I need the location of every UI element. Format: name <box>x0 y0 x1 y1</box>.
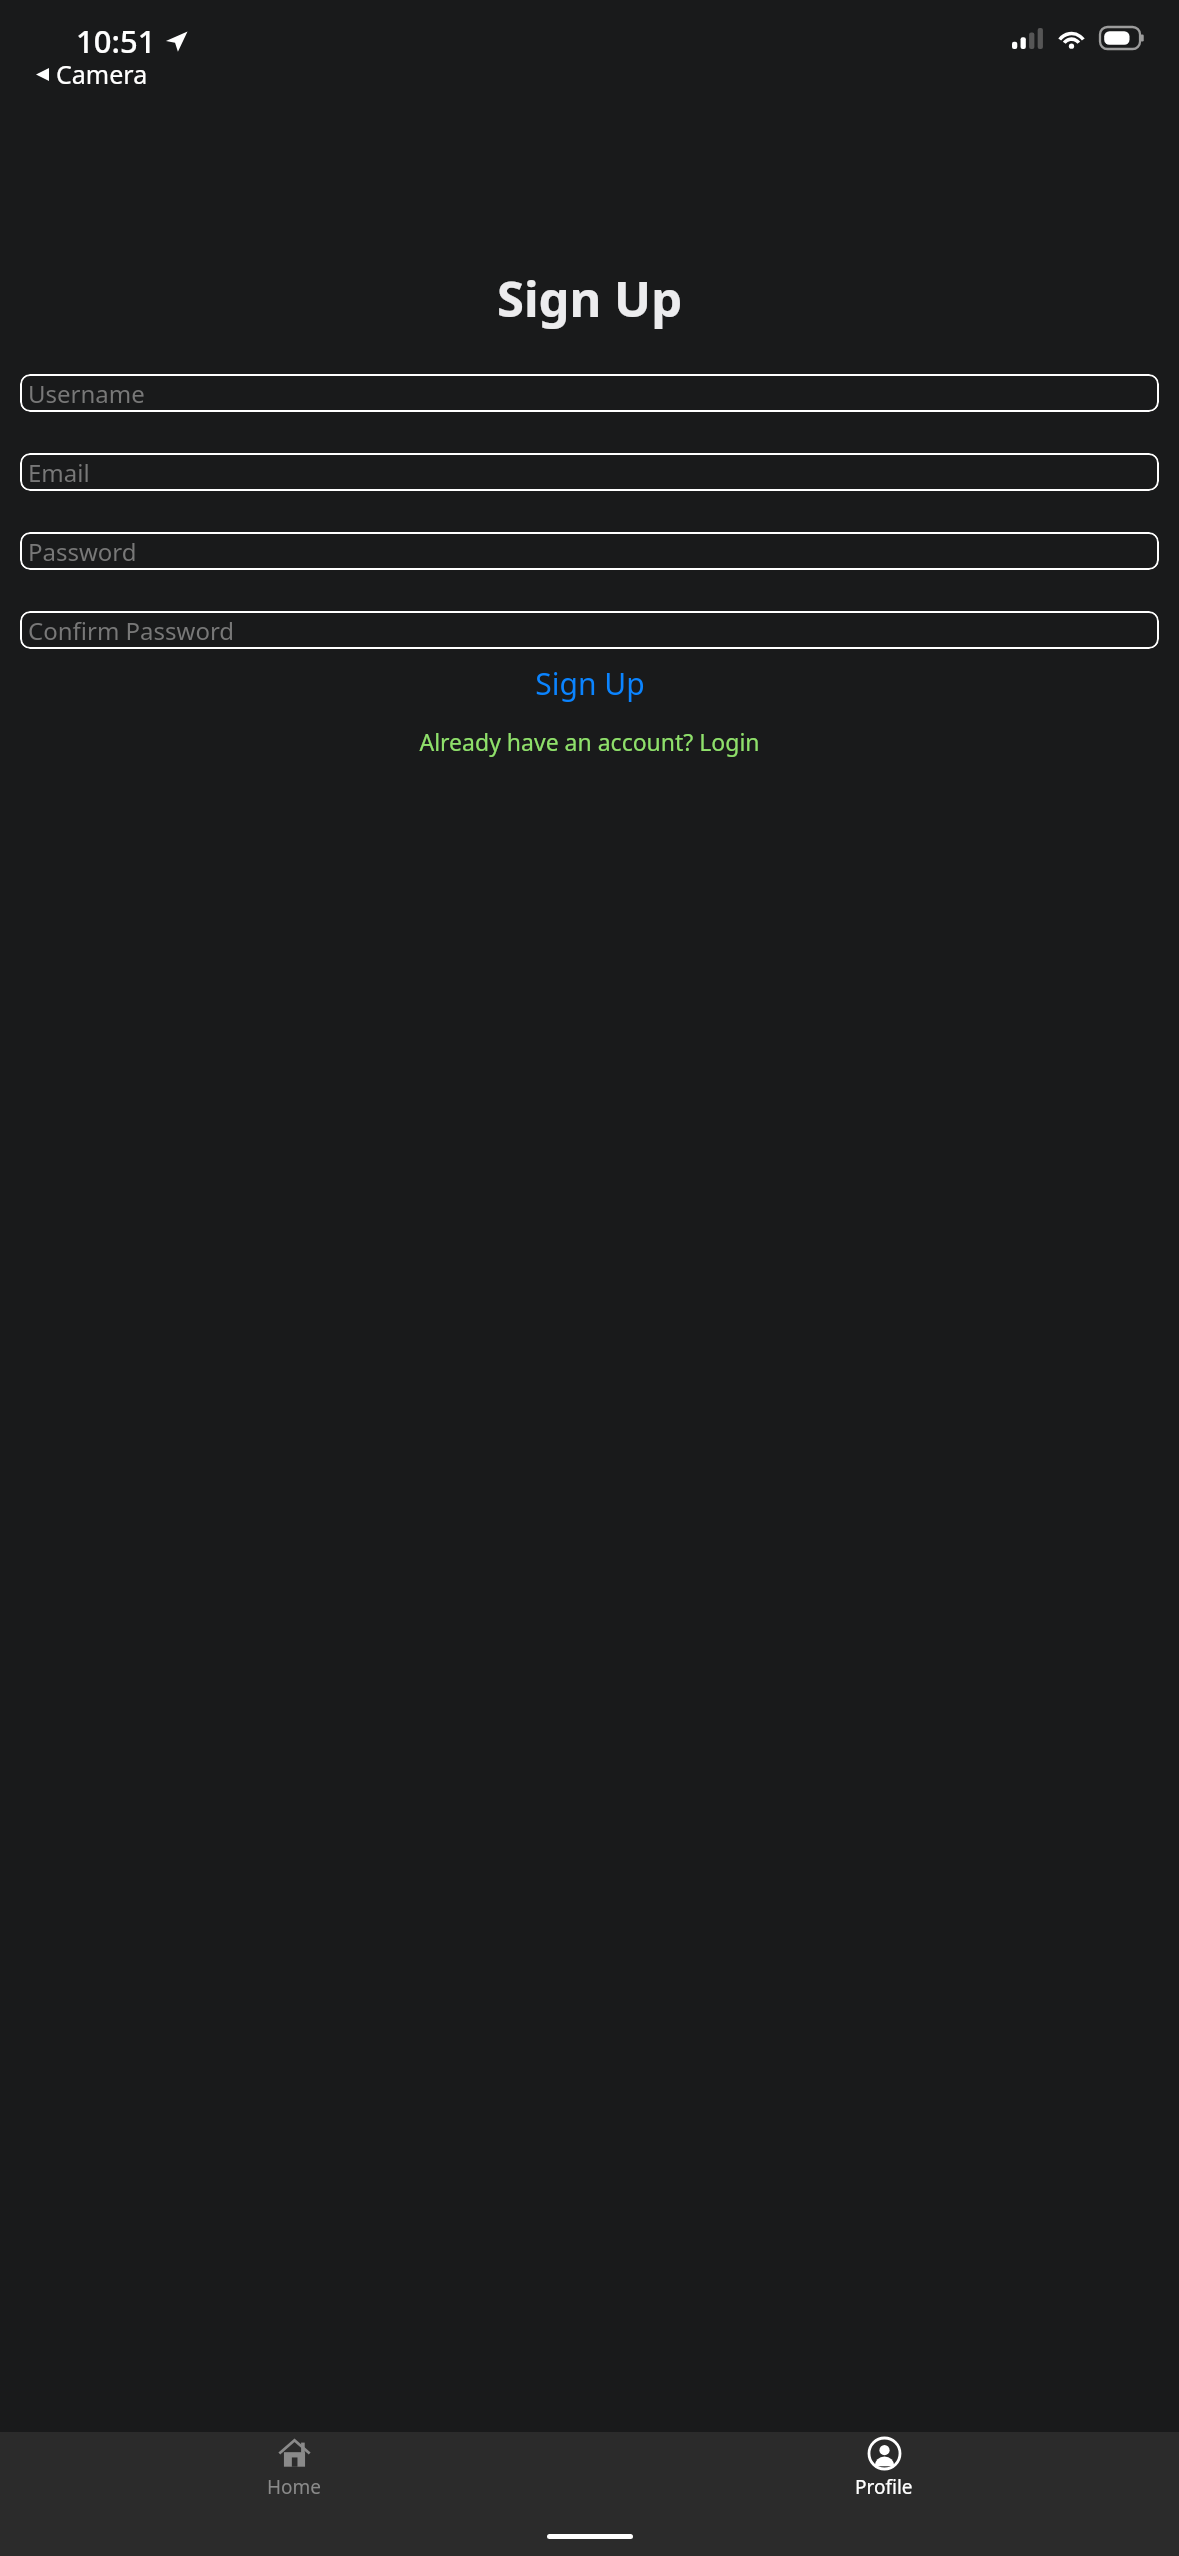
other: Battery <box>1100 27 1145 49</box>
other: Cellular signal <box>1012 28 1043 49</box>
button[interactable]: Email <box>20 453 1159 491</box>
staticText: 10:51 <box>76 20 156 62</box>
button[interactable]: Confirm Password <box>20 611 1159 649</box>
button[interactable]: Username <box>20 374 1159 412</box>
staticText: Email <box>28 456 90 489</box>
button[interactable]: Profile <box>825 2433 943 2504</box>
button[interactable]: Camera <box>32 55 152 93</box>
staticText: Username <box>28 377 145 410</box>
staticText: Password <box>28 535 137 568</box>
staticText: Home <box>267 2474 322 2500</box>
staticText: Camera <box>56 57 148 91</box>
button[interactable]: Sign Up <box>0 657 1179 710</box>
staticText: Profile <box>855 2474 913 2500</box>
button[interactable]: Home <box>237 2433 352 2504</box>
staticText: Confirm Password <box>28 614 235 647</box>
button[interactable]: Password <box>20 532 1159 570</box>
button[interactable]: Already have an account? Login <box>0 720 1179 763</box>
staticText: Already have an account? Login <box>419 726 760 757</box>
staticText: Sign Up <box>0 265 1179 332</box>
other: Wi-Fi <box>1056 27 1087 49</box>
staticText: Sign Up <box>535 663 645 704</box>
